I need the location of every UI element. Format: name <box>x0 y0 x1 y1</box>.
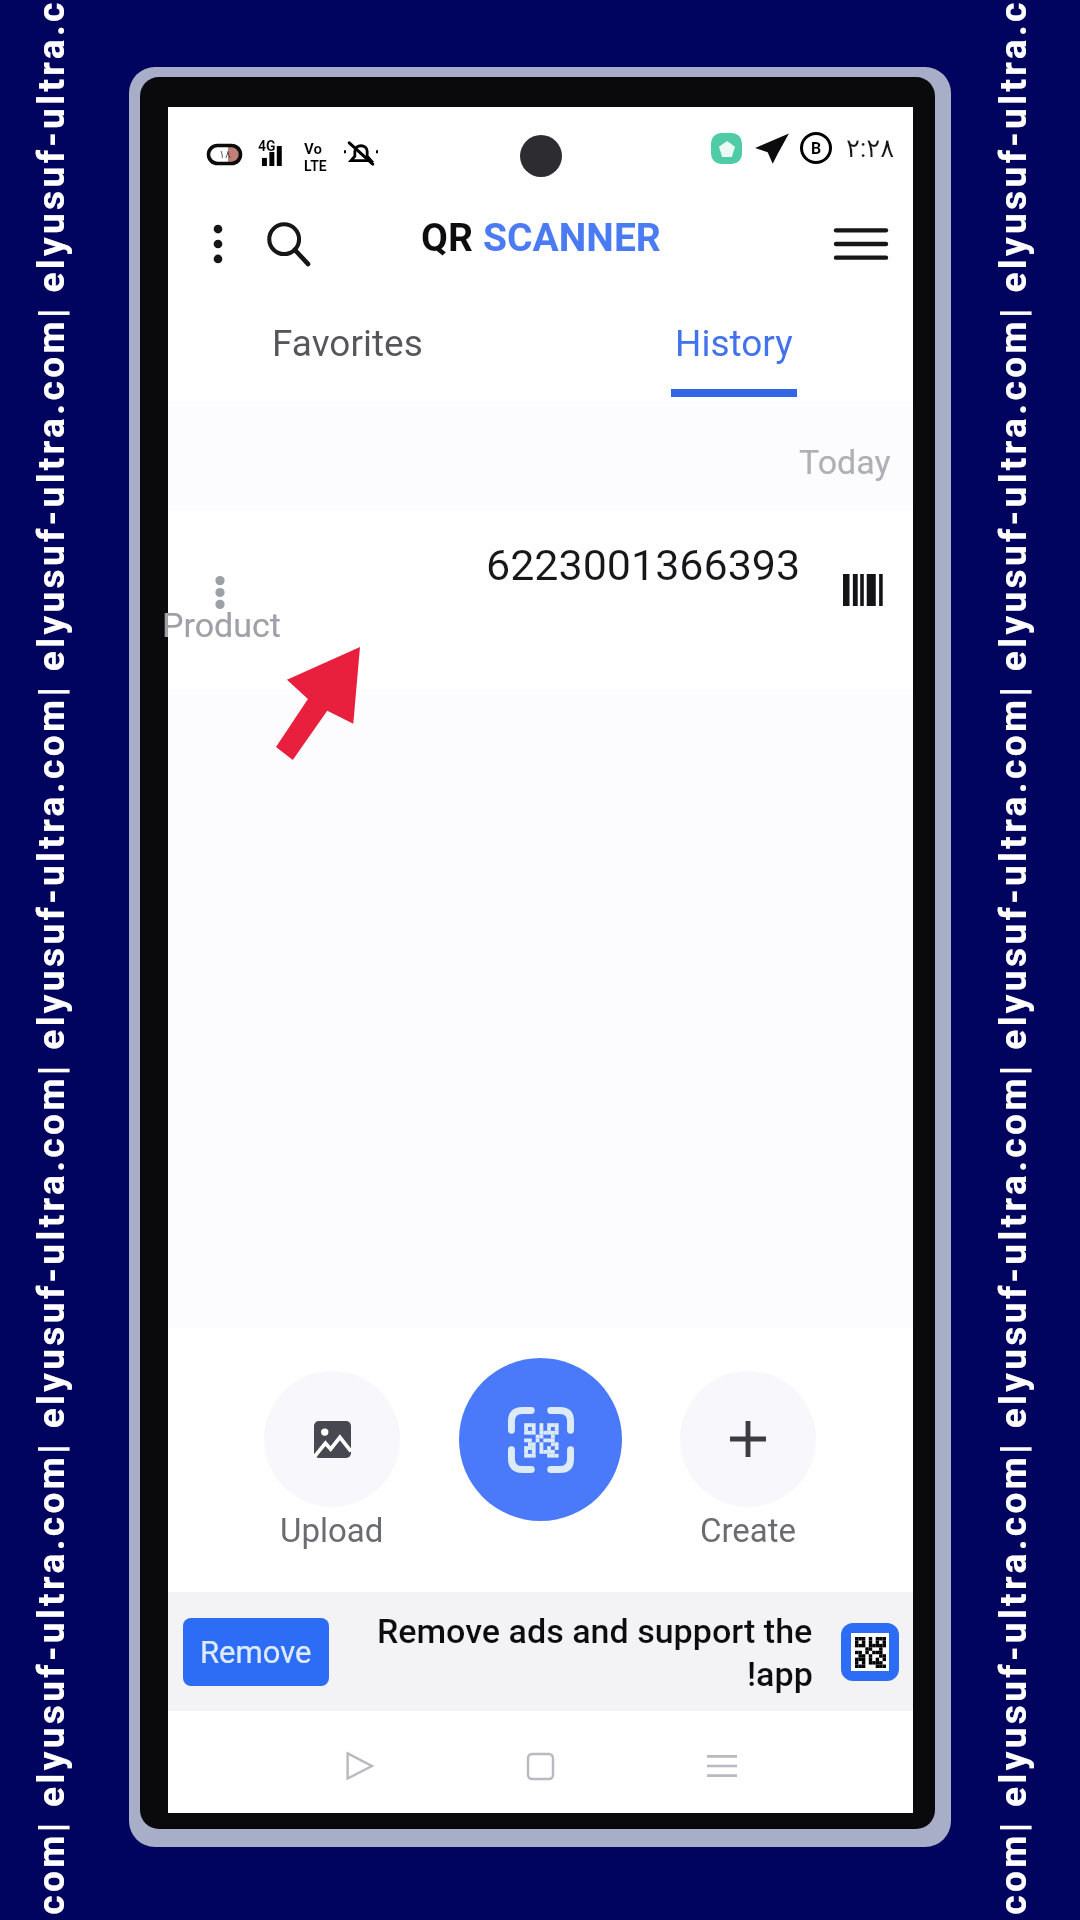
staticText: QR <box>421 215 483 261</box>
staticText: Create <box>700 1511 797 1550</box>
staticText: Vo <box>304 140 322 158</box>
staticText: B <box>811 139 822 158</box>
staticText: ٢:٢٨ <box>846 133 895 163</box>
button[interactable]: Home <box>504 1730 576 1802</box>
button[interactable]: Recent apps <box>686 1730 758 1802</box>
button[interactable]: Open QR ad <box>841 1623 899 1681</box>
button[interactable]: Remove <box>183 1618 329 1686</box>
button[interactable]: Back <box>323 1730 395 1802</box>
button[interactable]: Create <box>680 1371 816 1546</box>
button[interactable]: Favorites <box>168 291 540 399</box>
button[interactable]: Scan QR code <box>459 1358 622 1521</box>
button[interactable]: More options <box>186 212 250 276</box>
staticText: History <box>675 322 793 365</box>
staticText: SCANNER <box>483 215 661 261</box>
staticText: !app <box>747 1654 813 1694</box>
staticText: 6223001366393 <box>486 540 801 590</box>
staticText: Product <box>162 605 281 645</box>
staticText: Favorites <box>272 322 423 365</box>
staticText: LTE <box>304 158 327 174</box>
staticText: ١٨ <box>219 148 231 161</box>
button[interactable]: Upload <box>264 1371 400 1546</box>
button[interactable]: Menu <box>827 210 895 278</box>
staticText: 4G <box>258 138 276 154</box>
button[interactable]: Search <box>254 210 322 278</box>
staticText: Upload <box>280 1511 384 1550</box>
staticText: Remove ads and support the <box>377 1611 813 1651</box>
button[interactable]: 6223001366393 <box>168 511 913 689</box>
button[interactable]: History <box>540 291 913 399</box>
staticText: Today <box>799 442 891 482</box>
staticText: Remove <box>200 1634 312 1670</box>
